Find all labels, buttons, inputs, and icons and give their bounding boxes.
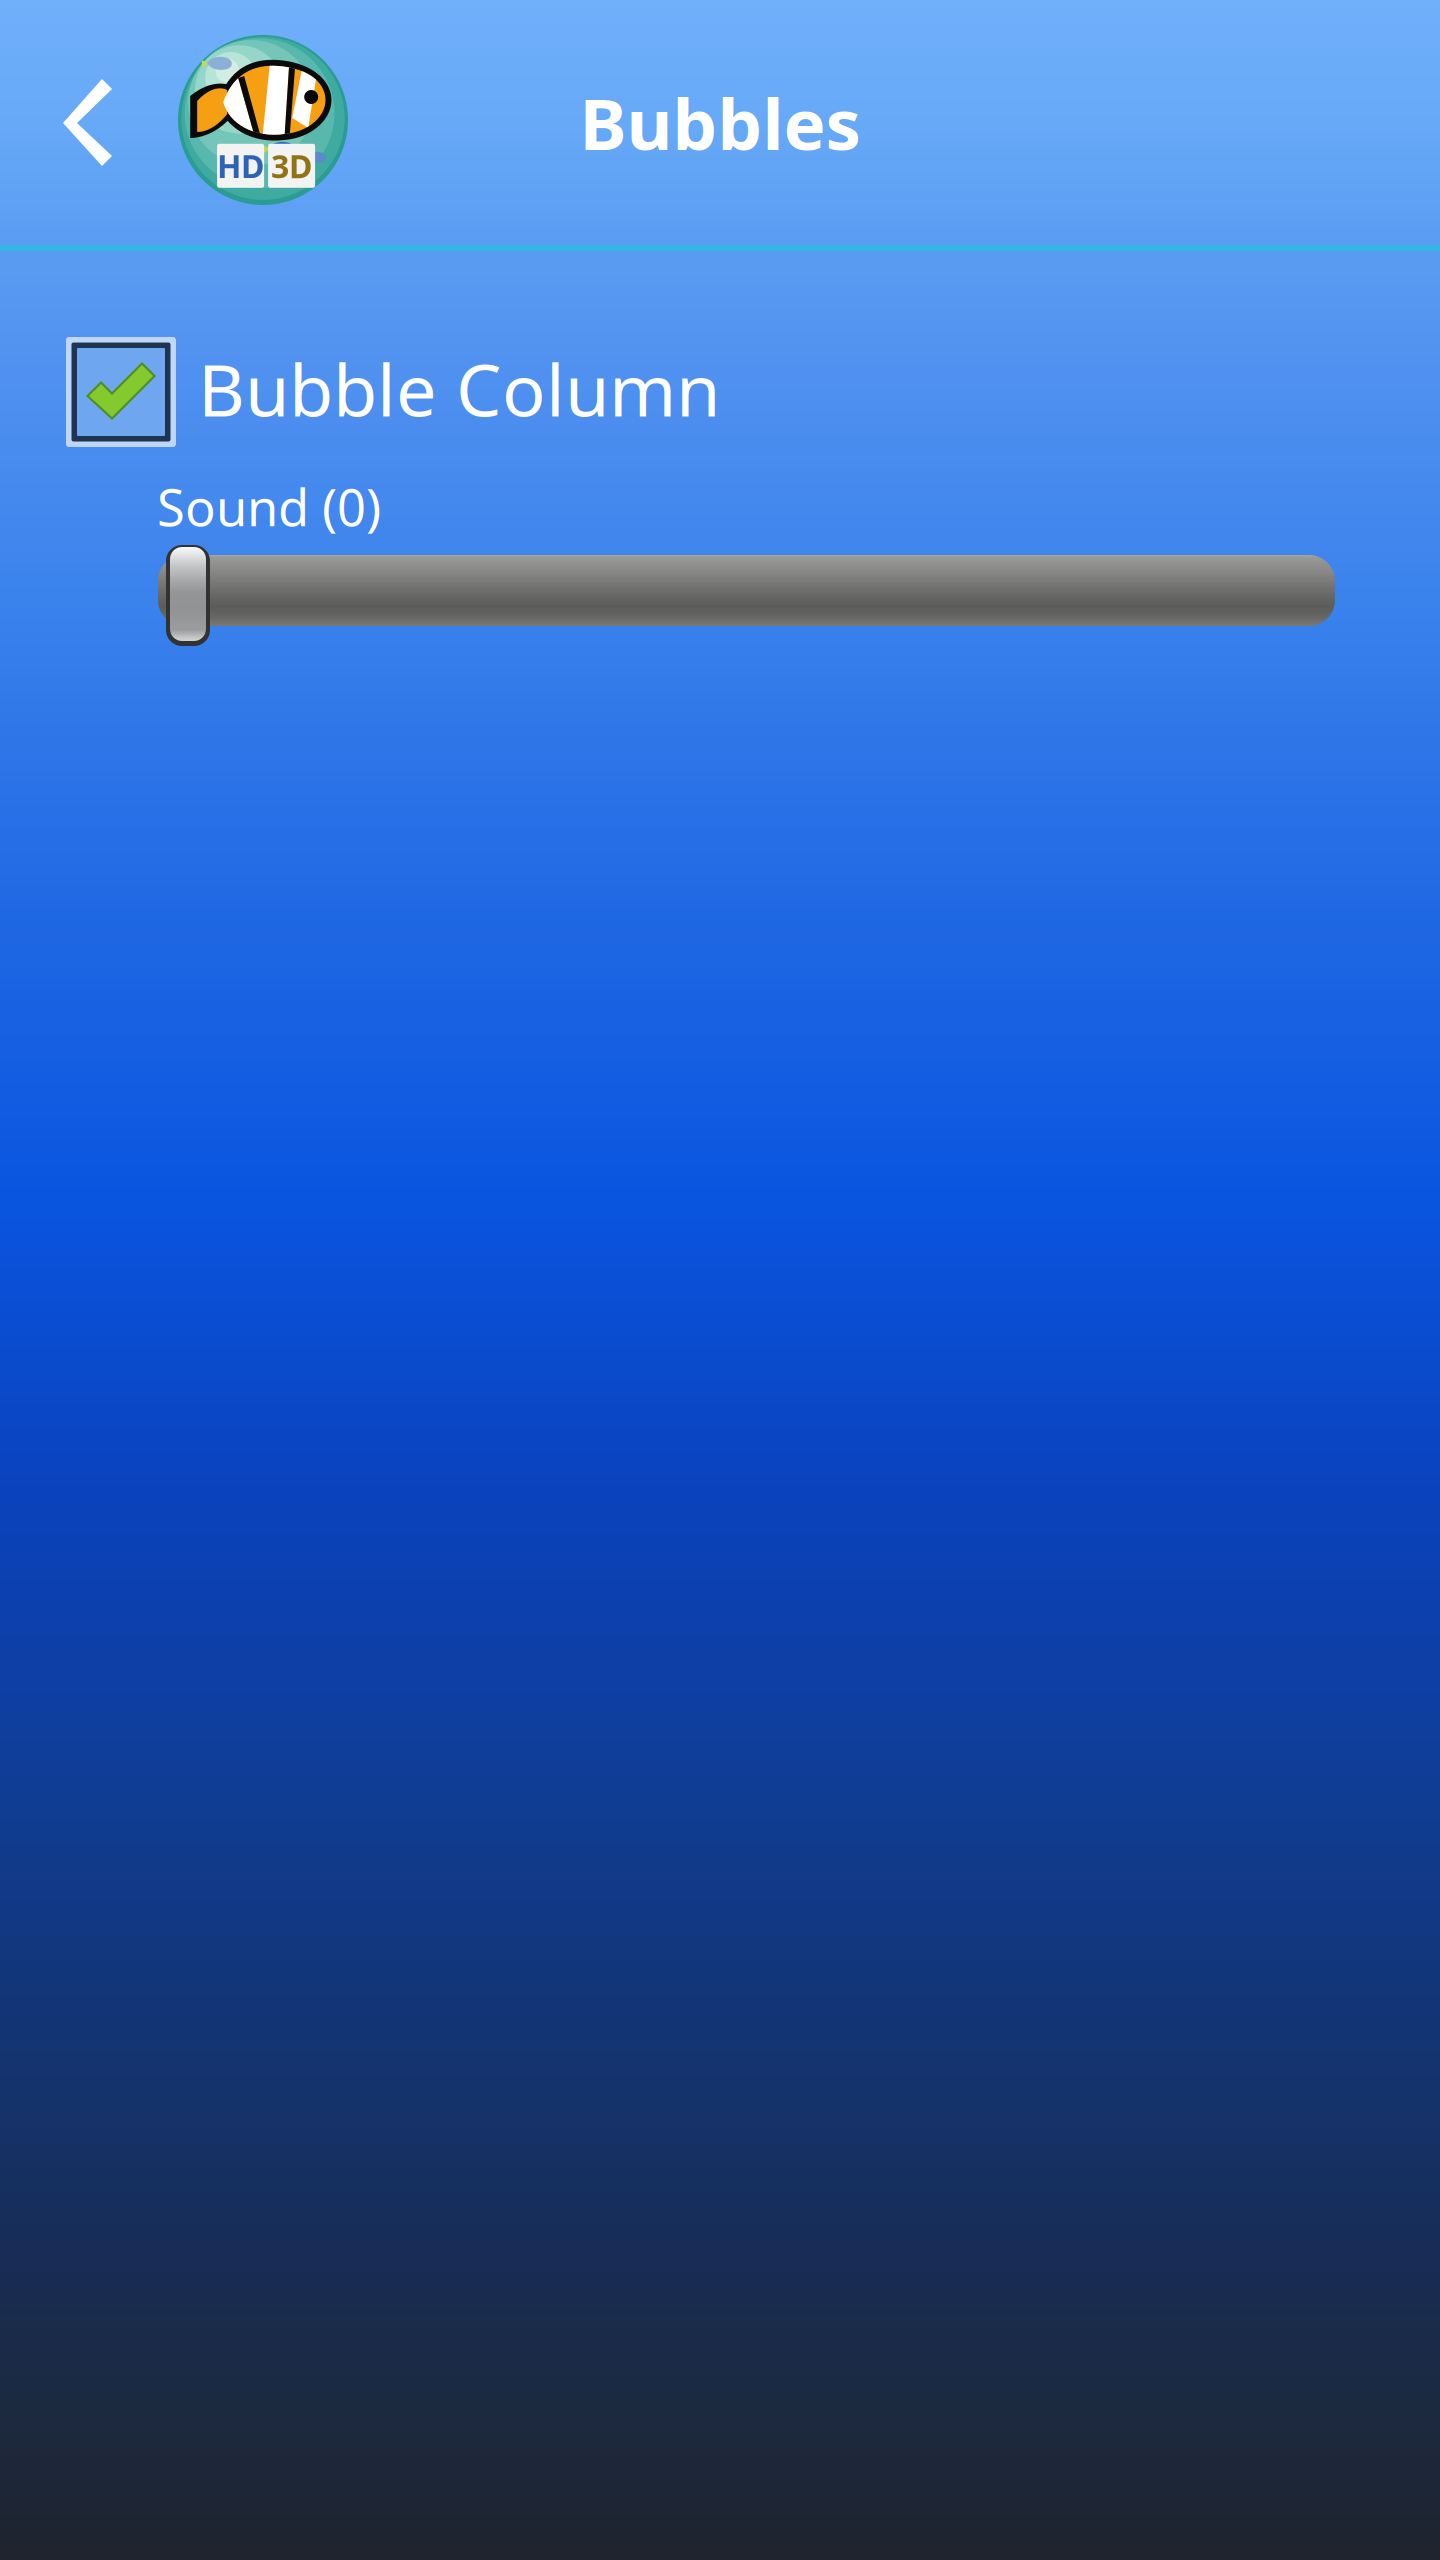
staticText: HD (217, 145, 264, 187)
button[interactable]: Bubble Column (0, 251, 1440, 2560)
button[interactable]: Bubbles app icon (0, 0, 1440, 245)
staticText: Bubble Column (198, 341, 720, 436)
staticText: Sound (0) (157, 473, 381, 540)
button[interactable]: Back (0, 0, 1440, 245)
staticText: 3D (271, 145, 312, 187)
staticText: Bubbles (579, 76, 860, 169)
